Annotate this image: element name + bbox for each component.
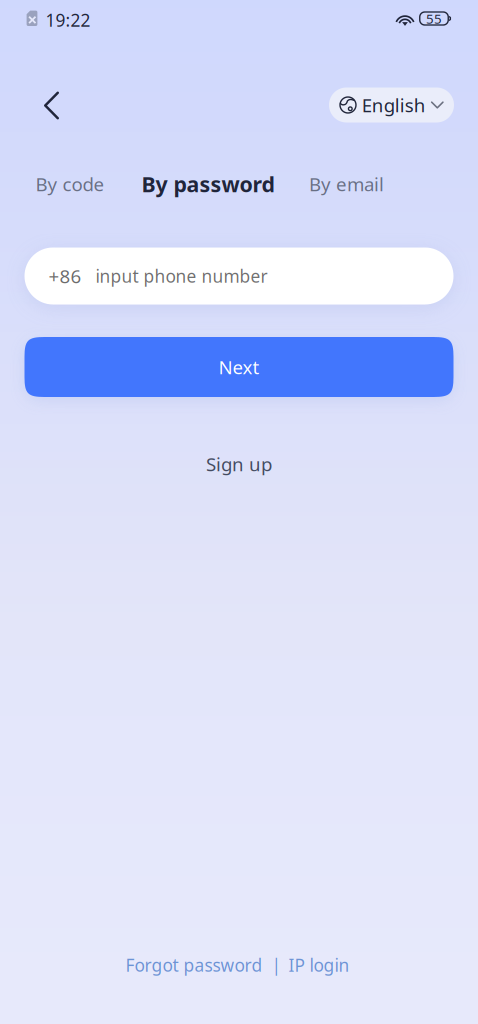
staticText: Next [218,355,259,379]
staticText: IP login [288,953,349,976]
button[interactable]: By code [25,164,115,204]
button[interactable]: By password [128,164,288,204]
staticText: input phone number [95,264,267,287]
staticText: Sign up [206,452,272,476]
staticText: 19:22 [45,8,90,31]
button[interactable]: Forgot password [119,950,269,980]
staticText: By password [141,170,274,198]
staticText: By email [309,172,384,196]
staticText: By code [35,172,104,196]
button[interactable]: Back [27,81,75,129]
button[interactable]: Next [24,337,453,397]
button[interactable]: English [329,87,454,122]
staticText: +86 [48,264,81,288]
button[interactable]: By email [298,164,394,204]
staticText: English [362,93,426,117]
staticText: 55 [426,10,442,27]
button[interactable]: Sign up [179,446,299,482]
button[interactable]: IP login [283,950,355,980]
staticText: | [271,953,281,976]
staticText: Forgot password [125,953,262,976]
